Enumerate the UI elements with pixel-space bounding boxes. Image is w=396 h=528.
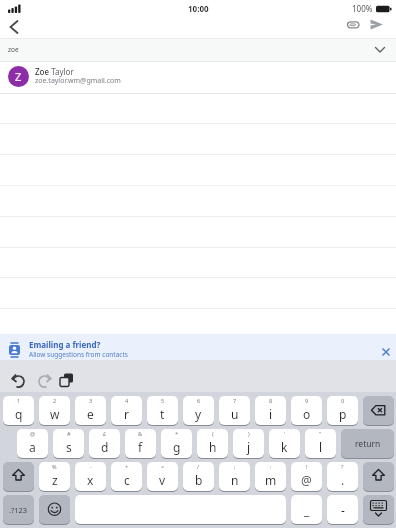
button[interactable]: [370, 19, 385, 31]
staticText: i: [269, 406, 273, 422]
staticText: k: [281, 439, 288, 455]
staticText: e: [87, 406, 94, 422]
button[interactable]: [3, 462, 34, 491]
button[interactable]: ': [269, 429, 300, 458]
button[interactable]: [8, 372, 30, 390]
button[interactable]: @: [17, 429, 48, 458]
button[interactable]: *: [161, 429, 192, 458]
button[interactable]: /: [183, 462, 214, 491]
staticText: j: [247, 439, 251, 455]
button[interactable]: £: [89, 429, 120, 458]
button[interactable]: %: [39, 462, 70, 491]
staticText: @: [301, 472, 312, 488]
staticText: o: [303, 406, 311, 422]
button[interactable]: 7: [219, 396, 250, 425]
staticText: t: [160, 406, 165, 422]
button[interactable]: [57, 372, 79, 390]
staticText: (: [212, 430, 214, 437]
staticText: 1: [17, 397, 21, 404]
staticText: ;: [234, 463, 236, 470]
button[interactable]: [4, 17, 28, 38]
staticText: 8: [269, 397, 273, 404]
staticText: ): [248, 430, 250, 437]
staticText: ': [284, 430, 286, 437]
staticText: x: [87, 472, 94, 488]
button[interactable]: 9: [291, 396, 322, 425]
staticText: !: [306, 463, 308, 470]
button[interactable]: (: [197, 429, 228, 458]
staticText: b: [195, 472, 203, 488]
staticText: f: [138, 439, 143, 455]
button[interactable]: ": [305, 429, 336, 458]
button[interactable]: &: [125, 429, 156, 458]
staticText: q: [15, 406, 23, 422]
staticText: 0: [341, 397, 345, 404]
staticText: u: [231, 406, 239, 422]
button[interactable]: ;: [219, 462, 250, 491]
staticText: =: [161, 463, 165, 470]
staticText: h: [209, 439, 217, 455]
button[interactable]: [33, 372, 55, 390]
button[interactable]: .?123: [3, 495, 34, 524]
staticText: return: [355, 438, 381, 450]
button[interactable]: ?: [327, 462, 358, 491]
button[interactable]: +: [111, 462, 142, 491]
button[interactable]: [378, 344, 394, 360]
staticText: %: [52, 463, 57, 470]
staticText: /: [197, 463, 200, 470]
button[interactable]: [345, 17, 363, 33]
button[interactable]: 8: [255, 396, 286, 425]
staticText: 2: [53, 397, 57, 404]
staticText: +: [125, 463, 129, 470]
staticText: 7: [233, 397, 237, 404]
button[interactable]: [363, 396, 394, 425]
staticText: _: [304, 502, 310, 518]
staticText: Zoe Taylor: [35, 66, 74, 77]
staticText: n: [231, 472, 239, 488]
staticText: Emailing a friend?: [29, 339, 101, 350]
staticText: @: [30, 430, 35, 437]
staticText: zoe.taylor.wm@gmail.com: [35, 76, 121, 86]
staticText: s: [66, 439, 72, 455]
button[interactable]: :: [255, 462, 286, 491]
button[interactable]: return: [341, 429, 394, 458]
button[interactable]: Z: [0, 61, 396, 92]
staticText: .: [341, 472, 345, 488]
button[interactable]: 2: [39, 396, 70, 425]
button[interactable]: 3: [75, 396, 106, 425]
button[interactable]: [75, 495, 286, 524]
button[interactable]: [363, 495, 394, 524]
staticText: y: [195, 406, 202, 422]
button[interactable]: -: [75, 462, 106, 491]
button[interactable]: zoe: [0, 38, 396, 61]
staticText: m: [265, 472, 277, 488]
button[interactable]: !: [291, 462, 322, 491]
button[interactable]: =: [147, 462, 178, 491]
button[interactable]: 1: [3, 396, 34, 425]
staticText: ": [319, 430, 322, 437]
button[interactable]: 0: [327, 396, 358, 425]
staticText: p: [339, 406, 347, 422]
staticText: :: [270, 463, 272, 470]
button[interactable]: ): [233, 429, 264, 458]
button[interactable]: 4: [111, 396, 142, 425]
staticText: r: [124, 406, 129, 422]
staticText: l: [319, 439, 323, 455]
staticText: 3: [89, 397, 93, 404]
button[interactable]: [39, 495, 70, 524]
staticText: 10:00: [188, 3, 209, 14]
staticText: Allow suggestions from contacts: [29, 350, 128, 359]
staticText: c: [124, 472, 130, 488]
button[interactable]: [363, 462, 394, 491]
staticText: -: [341, 502, 345, 518]
staticText: a: [29, 439, 36, 455]
staticText: #: [67, 430, 71, 437]
staticText: 9: [305, 397, 309, 404]
button[interactable]: -: [327, 495, 358, 524]
button[interactable]: 5: [147, 396, 178, 425]
button[interactable]: 6: [183, 396, 214, 425]
staticText: 100%: [352, 3, 373, 14]
button[interactable]: _: [291, 495, 322, 524]
button[interactable]: #: [53, 429, 84, 458]
staticText: 5: [161, 397, 165, 404]
